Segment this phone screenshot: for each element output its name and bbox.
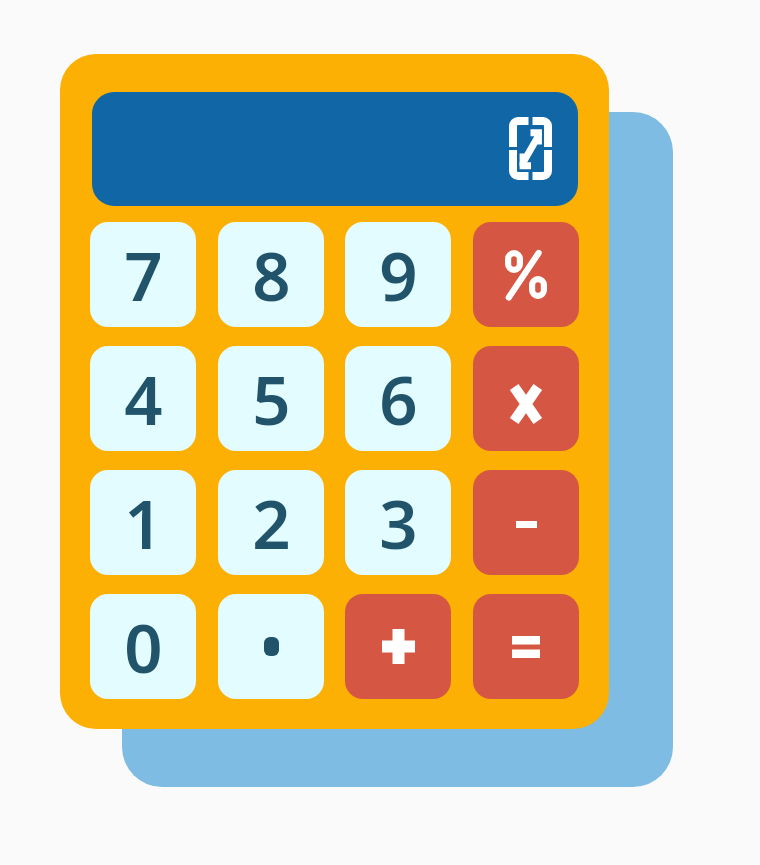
button[interactable]: = [473,594,579,699]
button[interactable]: 6 [345,346,451,451]
button[interactable]: 7 [90,222,196,327]
staticText: 3 [379,477,418,568]
staticText: 0 [124,601,163,692]
button[interactable]: 9 [345,222,451,327]
button[interactable]: - [473,470,579,575]
staticText: 6 [379,353,418,444]
staticText: 7 [124,229,163,320]
button[interactable]: 5 [218,346,324,451]
button[interactable]: X [473,346,579,451]
button[interactable]: % [473,222,579,327]
staticText: 8 [252,229,291,320]
staticText: 9 [379,229,418,320]
staticText: 1 [124,477,163,568]
button[interactable]: 3 [345,470,451,575]
staticText: 4 [124,353,163,444]
staticText: 5 [252,353,291,444]
button[interactable]: Expand display [92,92,578,206]
button[interactable]: 0 [90,594,196,699]
button[interactable]: Expand display [509,117,552,180]
button[interactable]: . [218,594,324,699]
button[interactable]: 8 [218,222,324,327]
button[interactable]: 2 [218,470,324,575]
button[interactable]: + [345,594,451,699]
button[interactable]: 4 [90,346,196,451]
button[interactable]: 1 [90,470,196,575]
staticText: 2 [252,477,291,568]
